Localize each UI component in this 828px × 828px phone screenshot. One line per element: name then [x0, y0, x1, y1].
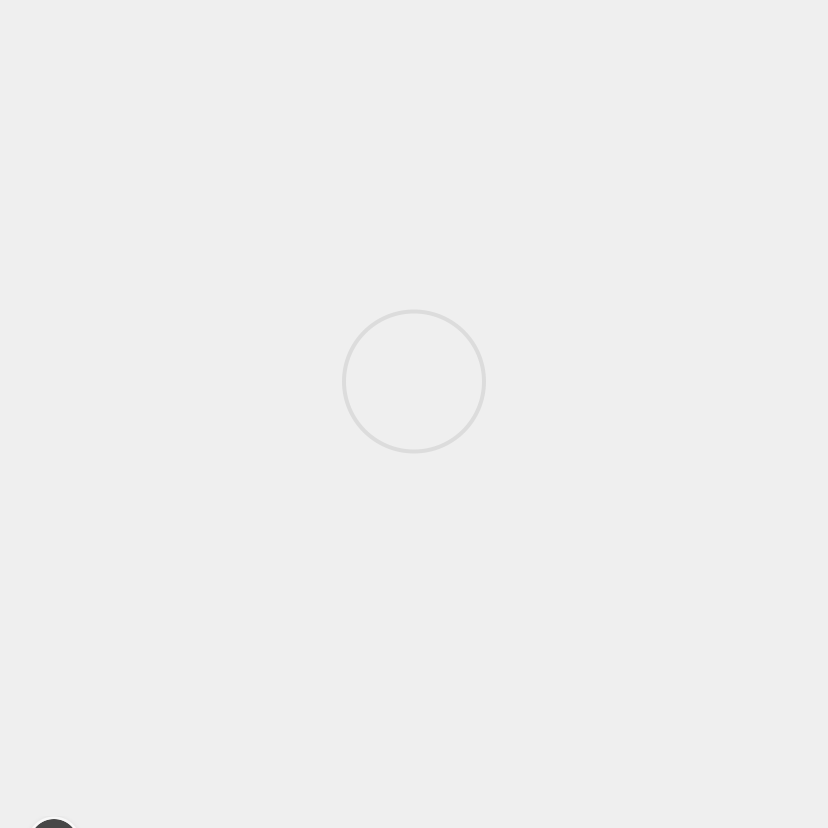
- button[interactable]: Compose: [29, 819, 78, 828]
